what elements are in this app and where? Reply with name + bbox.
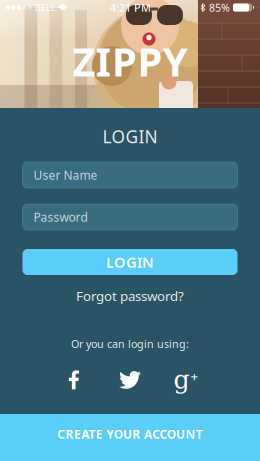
button[interactable]: Log in with Twitter [102, 370, 158, 390]
staticText: g [173, 365, 189, 395]
button[interactable]: CREATE YOUR ACCOUNT [0, 414, 260, 461]
button[interactable]: Log in with Google+ [158, 370, 214, 390]
button[interactable]: LOGIN [22, 249, 237, 275]
staticText: Or you can login using: [71, 337, 189, 351]
staticText: ZIPPY [72, 34, 188, 87]
staticText: 4:21 PM [110, 0, 151, 15]
button[interactable]: Log in with Facebook [46, 370, 102, 390]
staticText: + [190, 367, 198, 385]
staticText: Password [33, 209, 87, 225]
button[interactable]: User Name [22, 162, 237, 188]
staticText: User Name [33, 167, 97, 183]
staticText: LOGIN [102, 125, 157, 148]
button[interactable]: Forgot password? [76, 287, 184, 305]
staticText: Forgot password? [76, 287, 184, 305]
staticText: BELL [35, 1, 56, 14]
button[interactable]: Password [22, 204, 237, 230]
staticText: 85% [209, 0, 230, 15]
staticText: CREATE YOUR ACCOUNT [57, 426, 203, 442]
staticText: LOGIN [106, 252, 154, 272]
